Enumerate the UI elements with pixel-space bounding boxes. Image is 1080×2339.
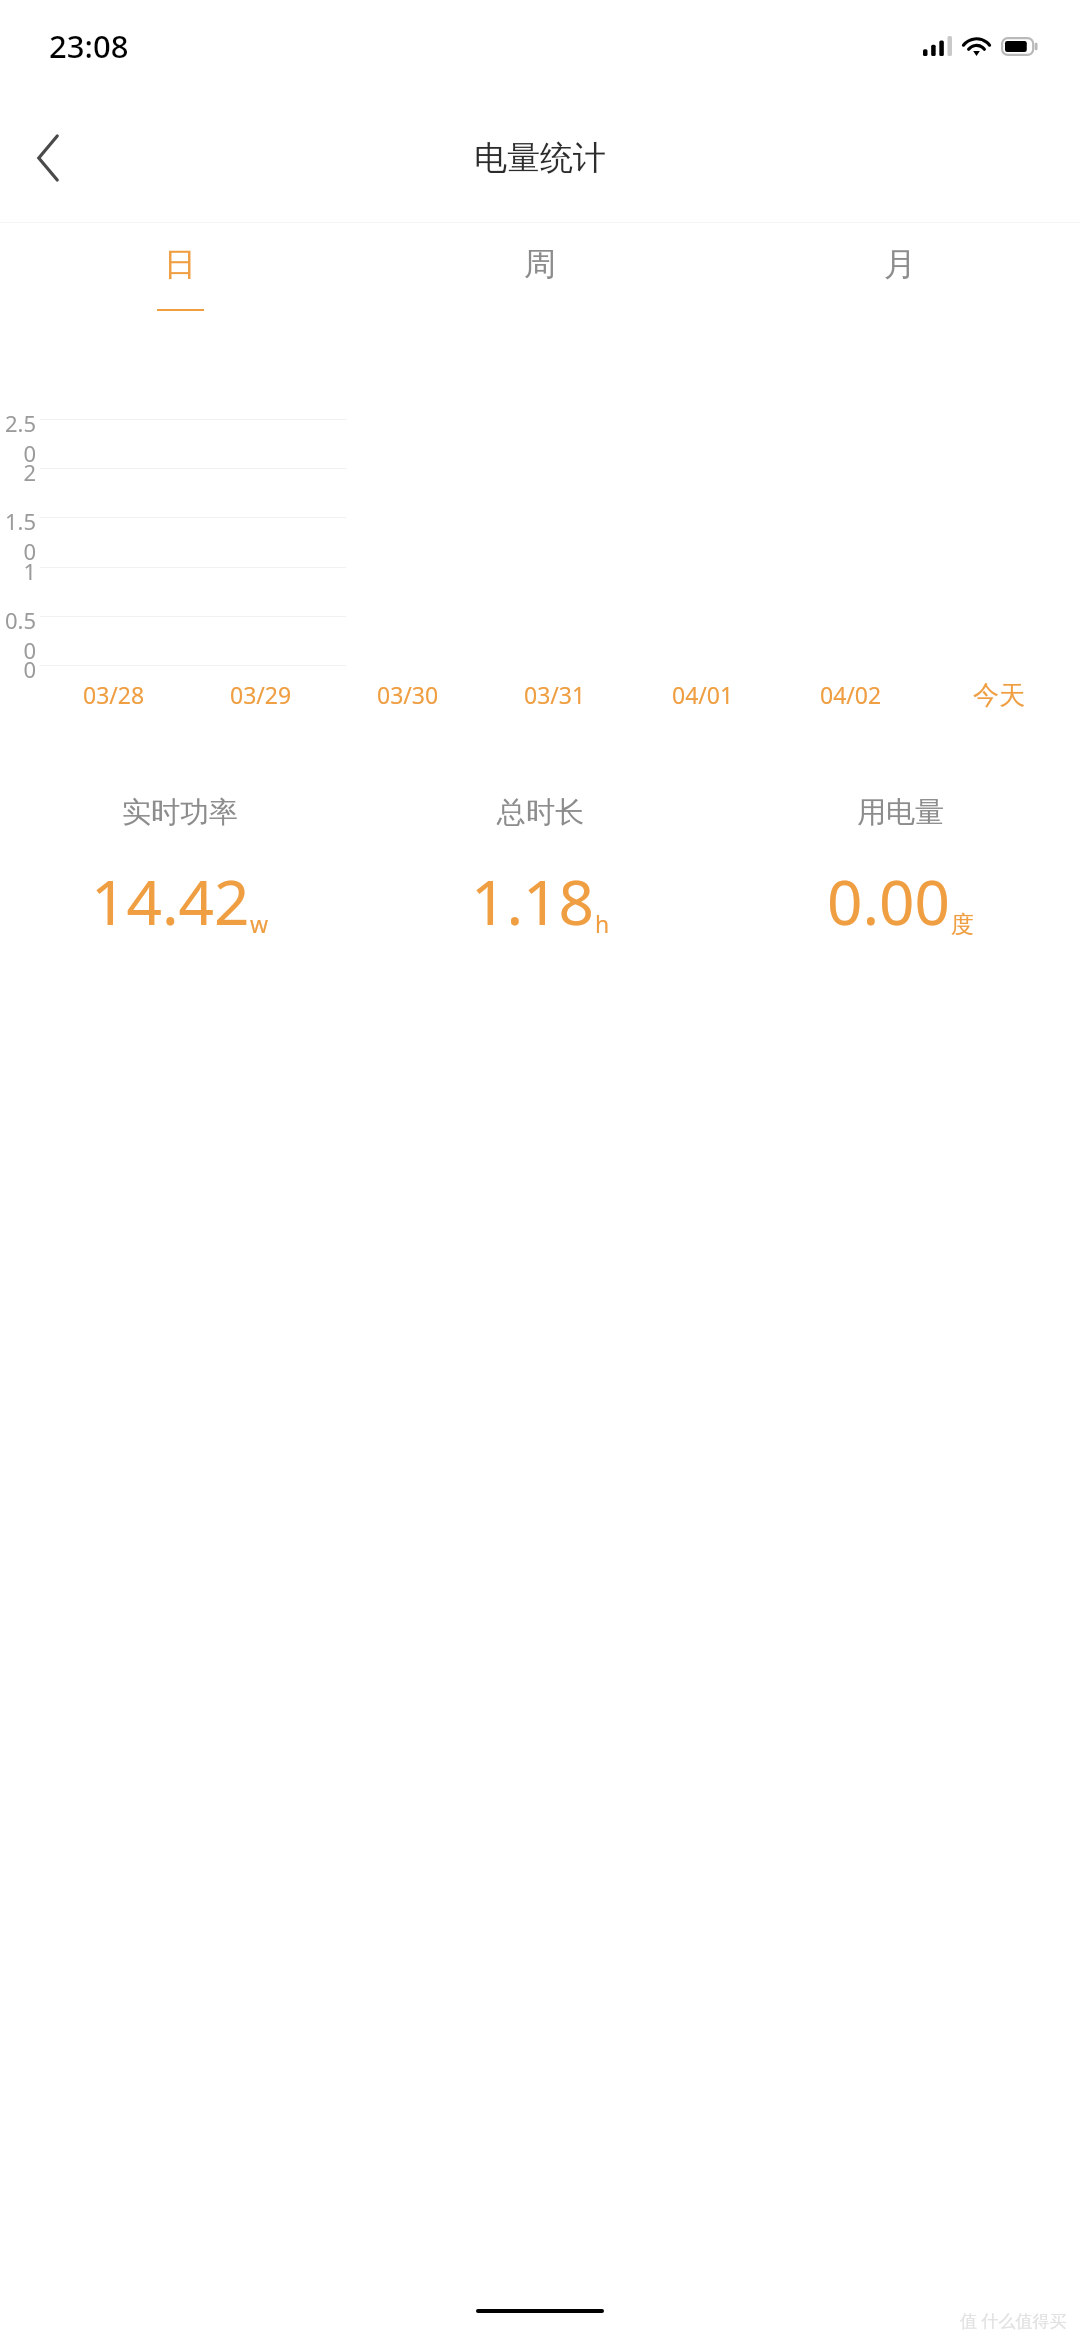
button[interactable]: 实时功率 (0, 794, 360, 943)
staticText: 0.00 (827, 859, 951, 943)
button[interactable]: Back (0, 110, 96, 206)
staticText: 1.50 (0, 506, 36, 566)
staticText: 值 什么值得买 (960, 2309, 1067, 2332)
button[interactable]: 用电量 (720, 794, 1080, 943)
button[interactable]: 月 (720, 223, 1080, 323)
staticText: 2 (0, 457, 36, 487)
button[interactable]: 日 (0, 223, 360, 323)
staticText: 03/28 (83, 679, 145, 710)
staticText: 1.18 (471, 859, 595, 943)
staticText: 用电量 (857, 794, 944, 831)
button[interactable]: 周 (360, 223, 720, 323)
staticText: 0.50 (0, 605, 36, 665)
staticText: 周 (524, 244, 556, 284)
staticText: w (250, 908, 269, 939)
staticText: 03/31 (524, 679, 586, 710)
staticText: 日 (164, 244, 196, 284)
staticText: 2.50 (0, 408, 36, 468)
staticText: 23:08 (49, 25, 129, 67)
staticText: 14.42 (91, 859, 250, 943)
staticText: 03/29 (230, 679, 292, 710)
staticText: 电量统计 (474, 137, 606, 179)
staticText: 实时功率 (122, 794, 238, 831)
staticText: 04/02 (820, 679, 882, 710)
staticText: 04/01 (672, 679, 734, 710)
button[interactable]: 总时长 (360, 794, 720, 943)
staticText: 1 (0, 556, 36, 586)
staticText: 月 (884, 244, 916, 284)
staticText: 度 (951, 910, 974, 939)
staticText: 03/30 (377, 679, 439, 710)
staticText: h (595, 908, 610, 939)
staticText: 0 (0, 654, 36, 684)
staticText: 今天 (973, 679, 1025, 712)
staticText: 总时长 (497, 794, 584, 831)
